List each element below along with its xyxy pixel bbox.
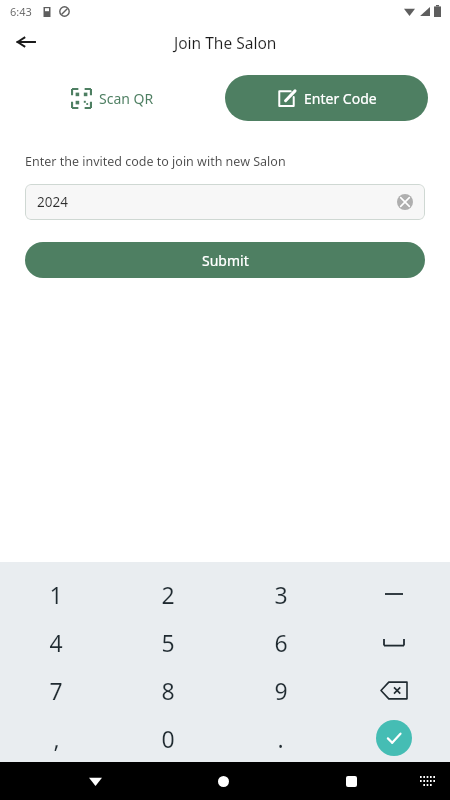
staticText: 7 xyxy=(49,675,63,706)
staticText: 8 xyxy=(161,675,175,706)
button[interactable]: 5 xyxy=(112,618,224,666)
staticText: 3 xyxy=(274,579,288,610)
button[interactable]: Space xyxy=(337,618,450,666)
button[interactable]: Clear text xyxy=(395,192,415,212)
button[interactable]: 8 xyxy=(112,666,224,714)
button[interactable]: Back xyxy=(76,762,114,800)
button[interactable]: Scan QR xyxy=(0,74,225,122)
button[interactable]: . xyxy=(224,714,337,762)
button[interactable]: Home xyxy=(204,762,242,800)
button[interactable]: Back xyxy=(8,24,44,60)
button[interactable]: 3 xyxy=(224,570,337,618)
button[interactable]: Enter Code xyxy=(225,75,428,121)
button[interactable]: Recents xyxy=(332,762,370,800)
button[interactable]: Submit xyxy=(25,242,425,278)
button[interactable]: 9 xyxy=(224,666,337,714)
button[interactable]: Backspace xyxy=(337,666,450,714)
staticText: 1 xyxy=(49,579,63,610)
button[interactable]: 0 xyxy=(112,714,224,762)
staticText: 6 xyxy=(274,627,288,658)
button[interactable]: Dash xyxy=(337,570,450,618)
staticText: 2 xyxy=(161,579,175,610)
staticText: 2024 xyxy=(37,193,68,211)
staticText: Submit xyxy=(202,251,249,270)
button[interactable]: 2024 xyxy=(25,184,425,220)
button[interactable]: 6 xyxy=(224,618,337,666)
button[interactable]: 2 xyxy=(112,570,224,618)
staticText: Enter Code xyxy=(304,89,377,108)
button[interactable]: Done xyxy=(337,714,450,762)
button[interactable]: , xyxy=(0,714,112,762)
staticText: 0 xyxy=(161,723,175,754)
staticText: Enter the invited code to join with new … xyxy=(25,153,286,170)
staticText: 4 xyxy=(49,627,63,658)
staticText: Join The Salon xyxy=(174,32,277,53)
staticText: 9 xyxy=(274,675,288,706)
staticText: 5 xyxy=(161,627,175,658)
staticText: Scan QR xyxy=(99,89,154,108)
button[interactable]: 1 xyxy=(0,570,112,618)
staticText: 6:43 xyxy=(10,4,32,19)
button[interactable]: Switch keyboard xyxy=(410,764,444,798)
staticText: . xyxy=(277,723,284,754)
staticText: , xyxy=(53,723,60,754)
button[interactable]: 4 xyxy=(0,618,112,666)
button[interactable]: 7 xyxy=(0,666,112,714)
